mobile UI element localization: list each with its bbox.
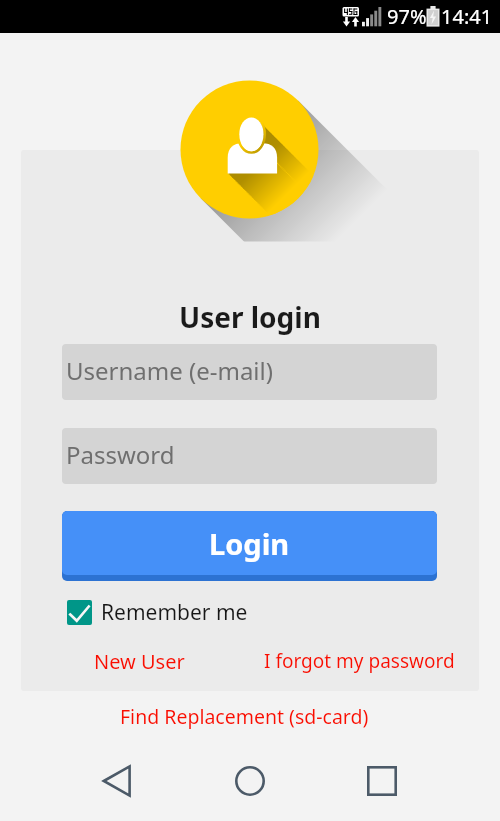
staticText: Login — [209, 524, 290, 563]
staticText: New User — [94, 648, 185, 675]
staticText: 97% — [387, 3, 427, 30]
button[interactable]: New User — [94, 648, 185, 675]
button[interactable]: Login — [62, 511, 437, 581]
staticText: Find Replacement (sd-card) — [120, 703, 369, 730]
button[interactable]: Username (e-mail) — [62, 344, 437, 400]
staticText: User login — [179, 298, 321, 336]
button[interactable]: Find Replacement (sd-card) — [120, 703, 369, 730]
staticText: Username (e-mail) — [66, 354, 273, 387]
button[interactable]: Password — [62, 428, 437, 484]
staticText: Remember me — [101, 598, 248, 627]
staticText: I forgot my password — [264, 648, 455, 674]
button[interactable]: Back — [93, 757, 141, 805]
staticText: Password — [66, 438, 175, 471]
button[interactable]: Recents — [358, 757, 406, 805]
staticText: 14:41 — [441, 3, 493, 30]
button[interactable]: Remember me — [60, 594, 248, 630]
button[interactable]: Home — [226, 757, 274, 805]
button[interactable]: I forgot my password — [264, 648, 455, 674]
